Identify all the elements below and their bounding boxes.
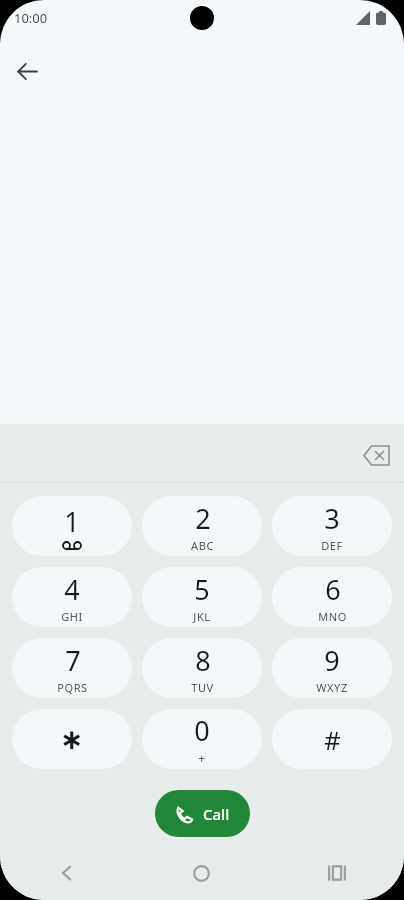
staticText: 4 [64, 571, 80, 608]
button[interactable]: 9 [272, 638, 392, 698]
staticText: 6 [325, 571, 341, 608]
staticText: PQRS [57, 680, 88, 695]
staticText: MNO [318, 609, 347, 624]
staticText: TUV [191, 680, 214, 695]
button[interactable]: 7 [12, 638, 132, 698]
staticText: 2 [195, 500, 211, 537]
staticText: 5 [194, 571, 210, 608]
staticText: ABC [191, 538, 214, 553]
button[interactable]: 6 [272, 567, 392, 627]
staticText: 3 [324, 500, 340, 537]
staticText: WXYZ [316, 680, 348, 695]
staticText: 8 [195, 642, 211, 679]
staticText: DEF [321, 538, 343, 553]
button[interactable]: # [272, 709, 392, 769]
staticText: 1 [64, 503, 80, 540]
staticText: 9 [324, 642, 340, 679]
button[interactable]: 5 [142, 567, 262, 627]
staticText: 7 [65, 642, 81, 679]
button[interactable]: Home [134, 846, 269, 900]
button[interactable]: 4 [12, 567, 132, 627]
button[interactable]: Backspace [354, 433, 398, 477]
staticText: GHI [61, 609, 83, 624]
button[interactable]: Back [0, 846, 134, 900]
button[interactable]: Back [7, 51, 47, 91]
staticText: ∗ [60, 723, 84, 756]
button[interactable]: 2 [142, 496, 262, 556]
staticText: JKL [193, 609, 211, 624]
staticText: # [324, 722, 341, 757]
button[interactable]: 8 [142, 638, 262, 698]
staticText: 0 [194, 712, 210, 749]
staticText: + [198, 750, 206, 766]
button[interactable]: 3 [272, 496, 392, 556]
button[interactable]: Call [155, 790, 250, 837]
button[interactable]: 0 [142, 709, 262, 769]
staticText: 10:00 [14, 9, 48, 27]
button[interactable]: 1 [12, 496, 132, 556]
button[interactable]: Recents [269, 846, 404, 900]
staticText: Call [203, 804, 230, 824]
button[interactable]: ∗ [12, 709, 132, 769]
